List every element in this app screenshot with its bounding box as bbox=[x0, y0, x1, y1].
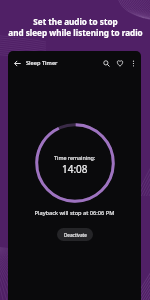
staticText: Sleep Timer bbox=[26, 59, 58, 67]
button[interactable]: Deactivate bbox=[57, 228, 93, 241]
staticText: Time remaining: bbox=[54, 154, 96, 161]
staticText: Set the audio to stop bbox=[33, 16, 118, 27]
staticText: Playback will stop at 06:06 PM bbox=[8, 209, 141, 217]
staticText: Deactivate bbox=[64, 232, 87, 238]
staticText: 14:08 bbox=[62, 162, 88, 176]
button[interactable]: More options bbox=[127, 57, 139, 69]
button[interactable]: Back bbox=[10, 56, 24, 70]
staticText: and sleep while listening to radio bbox=[8, 27, 143, 38]
button[interactable]: Search bbox=[99, 56, 113, 70]
button[interactable]: Favourite bbox=[113, 56, 127, 70]
